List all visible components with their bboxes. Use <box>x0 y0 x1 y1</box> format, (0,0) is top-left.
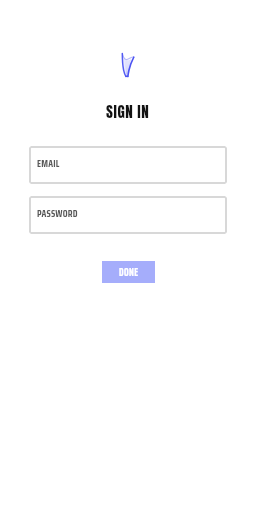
staticText: DONE <box>119 264 139 281</box>
staticText: EMAIL <box>37 156 60 171</box>
button[interactable]: EMAIL <box>29 146 227 184</box>
button[interactable]: DONE <box>102 261 155 283</box>
staticText: SIGN IN <box>106 100 150 123</box>
button[interactable]: PASSWORD <box>29 196 227 234</box>
other: App logo <box>121 53 135 77</box>
staticText: PASSWORD <box>37 206 78 221</box>
